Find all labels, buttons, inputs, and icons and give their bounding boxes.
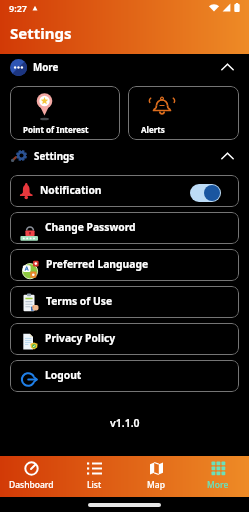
button[interactable]: Settings bbox=[10, 146, 239, 166]
staticText: Terms of Use bbox=[46, 294, 113, 308]
staticText: Logout bbox=[45, 368, 82, 382]
staticText: Point of Interest bbox=[23, 124, 89, 135]
staticText: Preferred Language bbox=[46, 257, 149, 271]
button[interactable]: Logout bbox=[10, 360, 239, 392]
button[interactable]: Point of Interest bbox=[10, 86, 120, 140]
button[interactable]: Privacy Policy bbox=[10, 323, 239, 355]
staticText: More bbox=[207, 479, 229, 491]
staticText: 9:27 bbox=[9, 2, 27, 14]
button[interactable]: More bbox=[187, 456, 249, 497]
staticText: Dashboard bbox=[9, 479, 54, 491]
button[interactable]: List bbox=[63, 456, 125, 497]
staticText: Map bbox=[147, 479, 165, 491]
staticText: Change Password bbox=[45, 220, 136, 234]
staticText: More bbox=[33, 61, 59, 74]
staticText: Alerts bbox=[141, 124, 165, 135]
button[interactable]: Preferred Language bbox=[10, 249, 239, 281]
button[interactable]: More bbox=[10, 57, 239, 77]
staticText: Notification bbox=[40, 183, 102, 197]
button[interactable]: Notification bbox=[10, 175, 239, 207]
staticText: v1.1.0 bbox=[110, 416, 140, 430]
button[interactable]: Dashboard bbox=[0, 456, 63, 497]
button[interactable]: Change Password bbox=[10, 212, 239, 244]
button[interactable] bbox=[190, 184, 221, 202]
staticText: List bbox=[87, 479, 102, 491]
button[interactable]: Alerts bbox=[128, 86, 239, 140]
button[interactable]: Map bbox=[125, 456, 187, 497]
staticText: Settings bbox=[34, 150, 75, 163]
button[interactable]: Terms of Use bbox=[10, 286, 239, 318]
staticText: Settings bbox=[10, 23, 72, 43]
staticText: Privacy Policy bbox=[45, 331, 116, 345]
